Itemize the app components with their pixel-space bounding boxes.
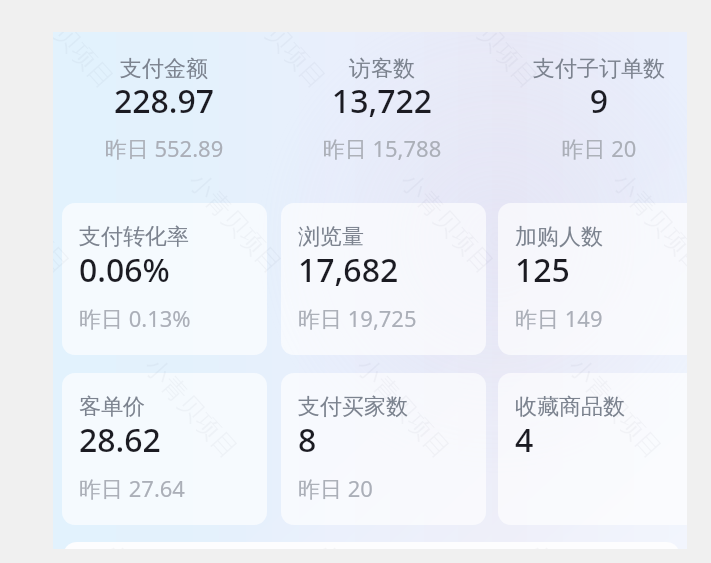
staticText: 小青贝项目 xyxy=(518,536,625,549)
staticText: 支付金额 xyxy=(54,55,274,83)
staticText: 客单价 xyxy=(79,393,267,421)
button[interactable]: 访客数 xyxy=(272,32,492,192)
staticText: 小青贝项目 xyxy=(306,536,413,549)
staticText: 125 xyxy=(515,248,687,292)
staticText: 浏览量 xyxy=(298,223,486,251)
staticText: 小青贝项目 xyxy=(53,32,121,95)
staticText: 小青贝项目 xyxy=(562,351,669,465)
staticText: 8 xyxy=(298,418,486,462)
staticText: 小青贝项目 xyxy=(438,32,545,95)
staticText: 小青贝项目 xyxy=(394,166,501,280)
button[interactable]: 支付转化率 xyxy=(62,203,267,355)
button[interactable]: 浏览量 xyxy=(281,203,486,355)
staticText: 收藏商品数 xyxy=(515,393,687,421)
staticText: 9 xyxy=(489,79,687,123)
button[interactable]: 支付买家数 xyxy=(281,373,486,525)
staticText: 昨日 27.64 xyxy=(79,473,267,503)
staticText: 昨日 552.89 xyxy=(54,133,274,163)
staticText: 228.97 xyxy=(54,79,274,123)
staticText: 小青贝项目 xyxy=(138,351,245,465)
staticText: 小青贝项目 xyxy=(350,351,457,465)
staticText: 13,722 xyxy=(272,79,492,123)
staticText: 17,682 xyxy=(298,248,486,292)
staticText: 0.06% xyxy=(79,248,267,292)
staticText: 昨日 15,788 xyxy=(272,133,492,163)
button[interactable]: 加购人数 xyxy=(498,203,687,355)
staticText: 昨日 20 xyxy=(298,473,486,503)
staticText: 支付子订单数 xyxy=(489,55,687,83)
staticText: 小青贝项目 xyxy=(94,536,201,549)
button[interactable]: 支付金额 xyxy=(54,32,274,192)
staticText: 支付转化率 xyxy=(79,223,267,251)
button[interactable]: 客单价 xyxy=(62,373,267,525)
staticText: 28.62 xyxy=(79,418,267,462)
staticText: 小青贝项目 xyxy=(53,166,77,280)
staticText: 昨日 149 xyxy=(515,303,687,333)
staticText: 昨日 0.13% xyxy=(79,303,267,333)
staticText: 4 xyxy=(515,418,687,462)
staticText: 小青贝项目 xyxy=(606,166,687,280)
staticText: 加购人数 xyxy=(515,223,687,251)
staticText: 昨日 20 xyxy=(489,133,687,163)
button[interactable]: 收藏商品数 xyxy=(498,373,687,525)
staticText: 小青贝项目 xyxy=(650,32,687,95)
staticText: 昨日 19,725 xyxy=(298,303,486,333)
button[interactable]: 支付子订单数 xyxy=(489,32,687,192)
staticText: 小青贝项目 xyxy=(182,166,289,280)
staticText: 访客数 xyxy=(272,55,492,83)
staticText: 支付买家数 xyxy=(298,393,486,421)
